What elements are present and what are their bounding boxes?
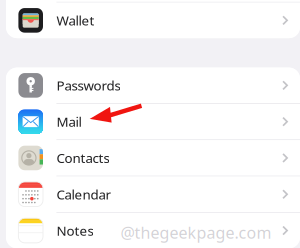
button[interactable]: Mail — [6, 104, 300, 139]
staticText: Passwords — [56, 76, 120, 94]
staticText: Notes — [56, 222, 93, 239]
staticText: Contacts — [56, 149, 109, 167]
button[interactable]: Calendar — [6, 176, 300, 212]
staticText: Calendar — [56, 185, 111, 203]
staticText: @thegeekpage.com — [120, 222, 271, 243]
button[interactable]: Notes — [6, 213, 300, 248]
button[interactable]: Passwords — [6, 68, 300, 103]
button[interactable]: Contacts — [6, 140, 300, 176]
button[interactable]: Wallet — [6, 3, 300, 38]
staticText: Mail — [56, 113, 81, 130]
staticText: Wallet — [56, 11, 94, 29]
